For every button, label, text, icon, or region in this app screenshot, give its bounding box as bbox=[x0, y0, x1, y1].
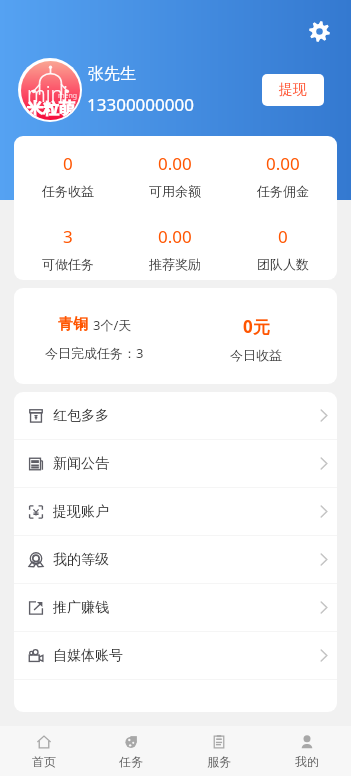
staticText: 今日收益 bbox=[230, 347, 282, 363]
button[interactable]: 任务 bbox=[87, 726, 175, 776]
staticText: 0 bbox=[63, 152, 73, 175]
button[interactable]: 0 bbox=[14, 152, 121, 199]
button[interactable]: 自媒体账号 bbox=[14, 632, 337, 679]
button[interactable]: 推广赚钱 bbox=[14, 584, 337, 631]
staticText: 提现账户 bbox=[53, 503, 109, 521]
staticText: 3 bbox=[63, 225, 73, 248]
staticText: 我的 bbox=[295, 754, 319, 769]
button[interactable]: 提现 bbox=[262, 74, 324, 106]
staticText: 红包多多 bbox=[53, 407, 109, 425]
staticText: 0.00 bbox=[266, 152, 300, 175]
button[interactable]: 服务 bbox=[175, 726, 263, 776]
staticText: 首页 bbox=[32, 754, 56, 769]
staticText: 青铜 bbox=[58, 315, 88, 334]
staticText: meng bbox=[58, 91, 78, 101]
staticText: 任务佣金 bbox=[257, 183, 309, 199]
button[interactable]: 0.00 bbox=[121, 225, 229, 272]
button[interactable]: Settings bbox=[303, 15, 335, 47]
button[interactable]: 新闻公告 bbox=[14, 440, 337, 487]
button[interactable]: 我的 bbox=[263, 726, 351, 776]
staticText: 米粒萌 bbox=[27, 99, 75, 119]
staticText: 0元 bbox=[243, 315, 270, 338]
button[interactable]: 我的等级 bbox=[14, 536, 337, 583]
button[interactable]: 0.00 bbox=[229, 152, 337, 199]
button[interactable]: Profile avatar bbox=[18, 58, 82, 122]
staticText: 可做任务 bbox=[42, 256, 94, 272]
staticText: mini bbox=[27, 80, 68, 109]
staticText: 0.00 bbox=[158, 152, 192, 175]
staticText: 3个/天 bbox=[93, 316, 132, 334]
staticText: 提现 bbox=[279, 81, 307, 99]
staticText: 自媒体账号 bbox=[53, 647, 123, 665]
staticText: 0.00 bbox=[158, 225, 192, 248]
staticText: 任务收益 bbox=[42, 183, 94, 199]
button[interactable]: 首页 bbox=[0, 726, 87, 776]
staticText: 服务 bbox=[207, 754, 231, 769]
button[interactable]: 3 bbox=[14, 225, 121, 272]
staticText: 任务 bbox=[119, 754, 143, 769]
button[interactable]: 红包多多 bbox=[14, 392, 337, 439]
staticText: 团队人数 bbox=[257, 256, 309, 272]
staticText: 0 bbox=[278, 225, 288, 248]
staticText: 推荐奖励 bbox=[149, 256, 201, 272]
staticText: 13300000000 bbox=[87, 93, 194, 116]
staticText: 可用余额 bbox=[149, 183, 201, 199]
staticText: 推广赚钱 bbox=[53, 599, 109, 617]
staticText: 新闻公告 bbox=[53, 455, 109, 473]
button[interactable]: 0.00 bbox=[121, 152, 229, 199]
staticText: 今日完成任务：3 bbox=[45, 344, 144, 362]
staticText: 张先生 bbox=[88, 64, 136, 84]
button[interactable]: 0 bbox=[229, 225, 337, 272]
staticText: 我的等级 bbox=[53, 551, 109, 569]
button[interactable]: 提现账户 bbox=[14, 488, 337, 535]
